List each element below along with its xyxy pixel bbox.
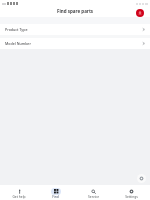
button[interactable]: Service: [74, 185, 112, 200]
staticText: Settings: [125, 194, 138, 198]
button[interactable]: Get help: [0, 185, 37, 200]
button[interactable]: Product Type: [0, 24, 150, 35]
button[interactable]: Account: [136, 9, 144, 17]
staticText: Product Type: [5, 27, 28, 32]
button[interactable]: Model Number: [0, 38, 150, 49]
button[interactable]: Settings: [112, 185, 150, 200]
button[interactable]: Find: [37, 185, 74, 200]
staticText: Service: [88, 194, 99, 198]
button[interactable]: Help: [137, 174, 146, 183]
staticText: Find spare parts: [57, 8, 94, 14]
staticText: Get help: [12, 194, 26, 198]
staticText: Find: [52, 194, 59, 198]
staticText: Model Number: [5, 41, 31, 46]
